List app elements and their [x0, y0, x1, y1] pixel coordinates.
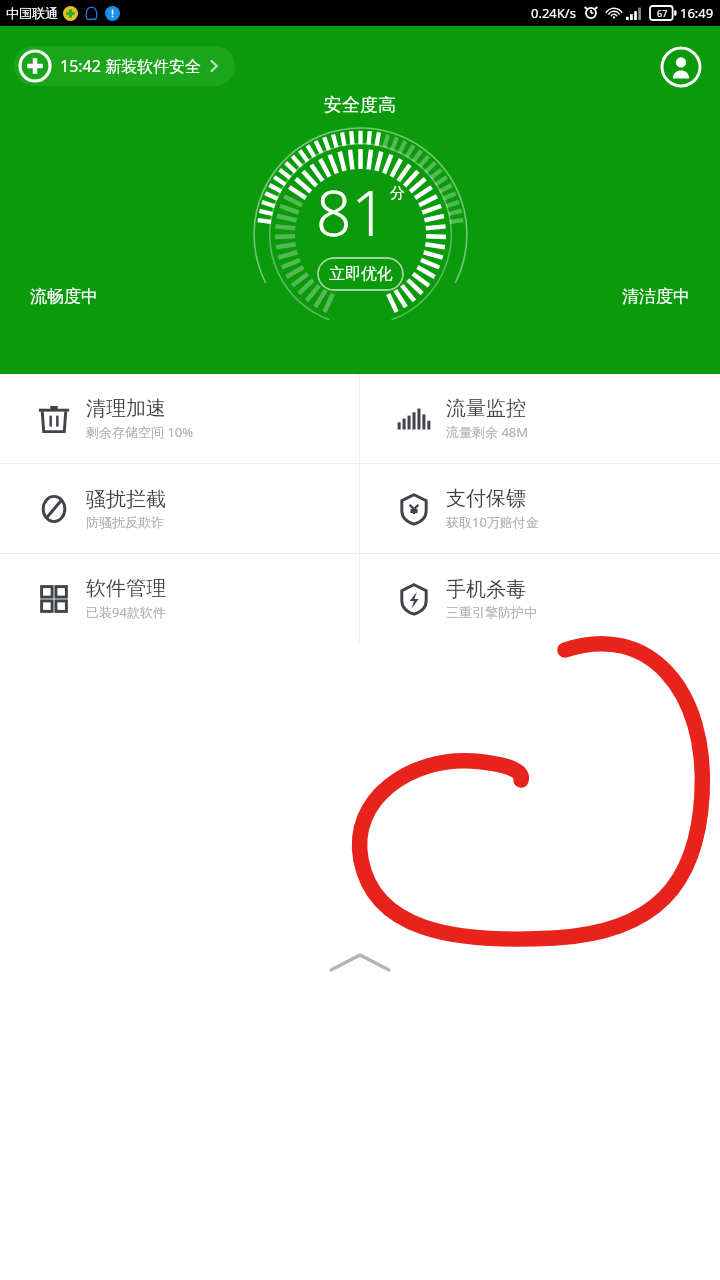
button[interactable]: 支付保镖 — [360, 464, 720, 553]
staticText: 清洁度中 — [622, 286, 690, 307]
button[interactable]: 手机杀毒 — [360, 554, 720, 643]
staticText: 已装94款软件 — [86, 603, 166, 621]
staticText: 清理加速 — [86, 396, 166, 421]
staticText: 获取10万赔付金 — [446, 513, 539, 531]
button[interactable]: 15:42 新装软件安全 — [14, 46, 235, 86]
staticText: 流量监控 — [446, 396, 526, 421]
staticText: 立即优化 — [329, 264, 393, 284]
button[interactable]: 流量监控 — [360, 374, 720, 463]
staticText: 67 — [657, 7, 668, 19]
staticText: 流畅度中 — [30, 286, 98, 307]
staticText: 防骚扰反欺诈 — [86, 514, 164, 530]
staticText: 骚扰拦截 — [86, 487, 166, 512]
staticText: 三重引擎防护中 — [446, 604, 537, 620]
staticText: 分 — [390, 184, 405, 203]
staticText: 流量剩余 48M — [446, 423, 529, 441]
staticText: 15:42 新装软件安全 — [60, 55, 202, 77]
button[interactable]: 个人中心 — [660, 46, 702, 88]
button[interactable]: 清理加速 — [0, 374, 359, 463]
staticText: 16:49 — [680, 4, 714, 22]
staticText: 81 — [316, 170, 387, 254]
staticText: 手机杀毒 — [446, 577, 526, 602]
staticText: 剩余存储空间 10% — [86, 423, 194, 441]
button[interactable]: 骚扰拦截 — [0, 464, 359, 553]
staticText: 支付保镖 — [446, 486, 526, 511]
staticText: 安全度高 — [324, 94, 396, 117]
staticText: 中国联通 — [6, 5, 58, 21]
button[interactable]: 软件管理 — [0, 554, 359, 643]
staticText: 0.24K/s — [531, 4, 576, 22]
staticText: 软件管理 — [86, 576, 166, 601]
button[interactable]: 立即优化 — [317, 257, 404, 291]
